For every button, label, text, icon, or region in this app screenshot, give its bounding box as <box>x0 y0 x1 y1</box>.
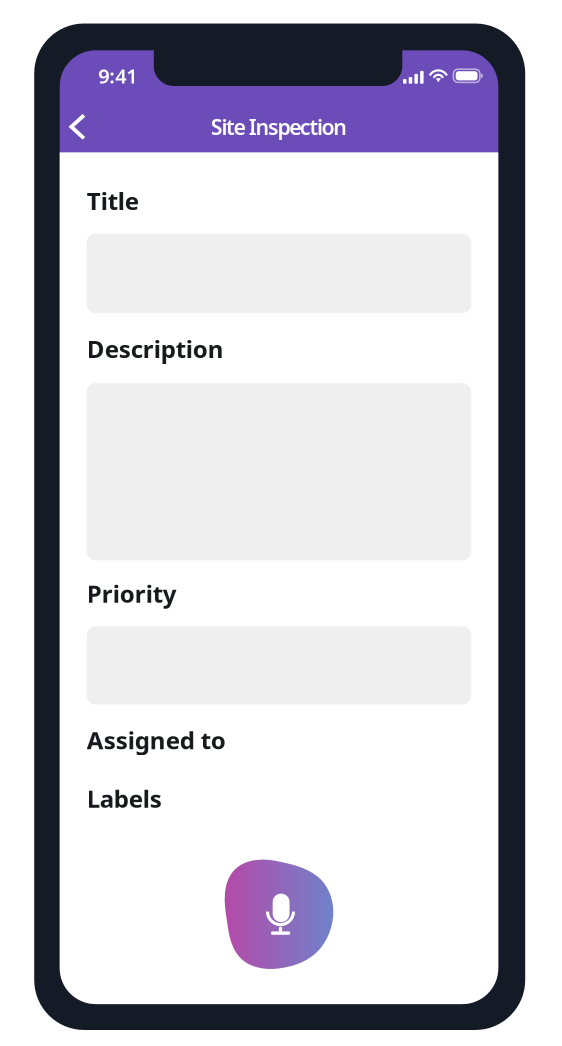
button[interactable]: Record voice note <box>225 860 333 970</box>
button[interactable]: Back <box>60 105 96 149</box>
staticText: Site Inspection <box>211 113 347 141</box>
staticText: Assigned to <box>87 724 226 756</box>
staticText: 9:41 <box>98 62 137 89</box>
staticText: Priority <box>87 577 177 609</box>
staticText: Labels <box>87 783 162 814</box>
staticText: Title <box>87 185 139 217</box>
staticText: Description <box>87 333 224 365</box>
